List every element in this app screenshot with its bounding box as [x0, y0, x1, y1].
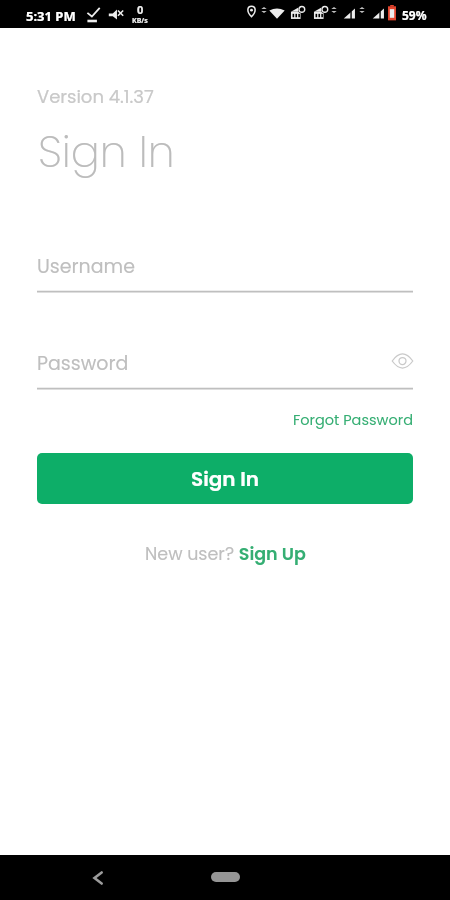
staticText: Forgot Password — [293, 410, 413, 430]
staticText: 59% — [402, 7, 427, 23]
staticText: New user? Sign Up — [145, 542, 306, 567]
button[interactable]: Forgot Password — [293, 410, 413, 430]
staticText: 0 — [137, 2, 144, 17]
button[interactable]: Sign In — [37, 453, 413, 504]
staticText: Version 4.1.37 — [37, 84, 154, 109]
button[interactable]: Back — [82, 862, 114, 894]
button[interactable]: Username — [37, 251, 413, 281]
staticText: KB/s — [132, 16, 148, 26]
staticText: Sign In — [191, 465, 260, 493]
staticText: 5:31 PM — [26, 7, 76, 25]
button[interactable]: Show password — [389, 348, 415, 374]
staticText: Password — [37, 350, 129, 377]
button[interactable]: Home — [211, 872, 240, 882]
button[interactable]: Password — [37, 348, 413, 378]
staticText: Sign In — [38, 122, 175, 182]
button[interactable]: New user? Sign Up — [145, 542, 306, 567]
staticText: Username — [37, 253, 135, 280]
